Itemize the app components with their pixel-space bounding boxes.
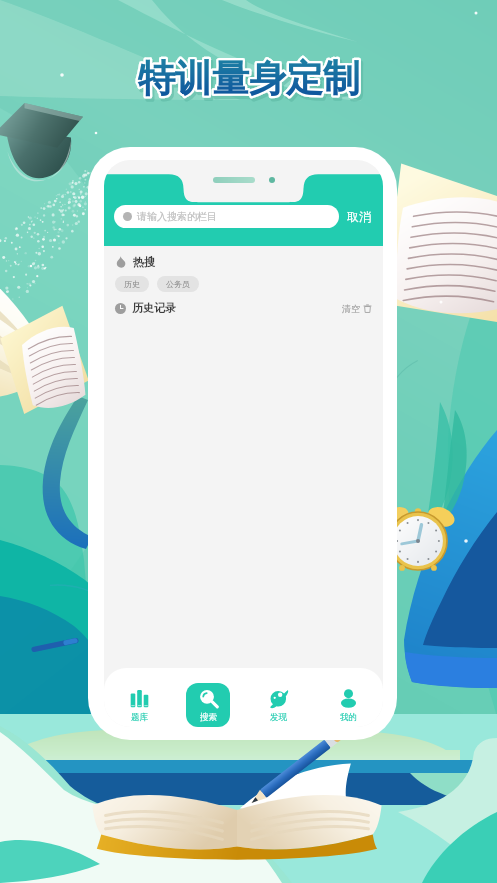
button[interactable]: 请输入搜索的栏目	[114, 205, 339, 228]
staticText: 请输入搜索的栏目	[137, 210, 217, 223]
staticText: 清空	[342, 303, 360, 314]
staticText: 特训量身定制	[138, 55, 360, 102]
staticText: 特训量身定制	[140, 58, 362, 105]
button[interactable]: 公务员	[157, 276, 199, 292]
staticText: 特训量身定制	[138, 55, 360, 102]
staticText: 公务员	[166, 279, 190, 289]
button[interactable]: 发现	[243, 683, 313, 727]
button[interactable]: 清空	[342, 303, 372, 314]
button[interactable]: 历史	[115, 276, 149, 292]
staticText: 热搜	[133, 255, 155, 269]
button[interactable]: 我的	[313, 683, 383, 727]
staticText: 历史	[124, 279, 140, 289]
staticText: 历史记录	[132, 301, 176, 315]
staticText: 取消	[347, 209, 371, 224]
staticText: 发现	[270, 712, 287, 723]
staticText: 题库	[131, 712, 148, 723]
staticText: 搜索	[200, 712, 217, 723]
button[interactable]: 搜索	[173, 683, 243, 727]
button[interactable]: 取消	[339, 209, 373, 224]
staticText: 我的	[340, 712, 357, 723]
button[interactable]: 题库	[104, 683, 173, 727]
